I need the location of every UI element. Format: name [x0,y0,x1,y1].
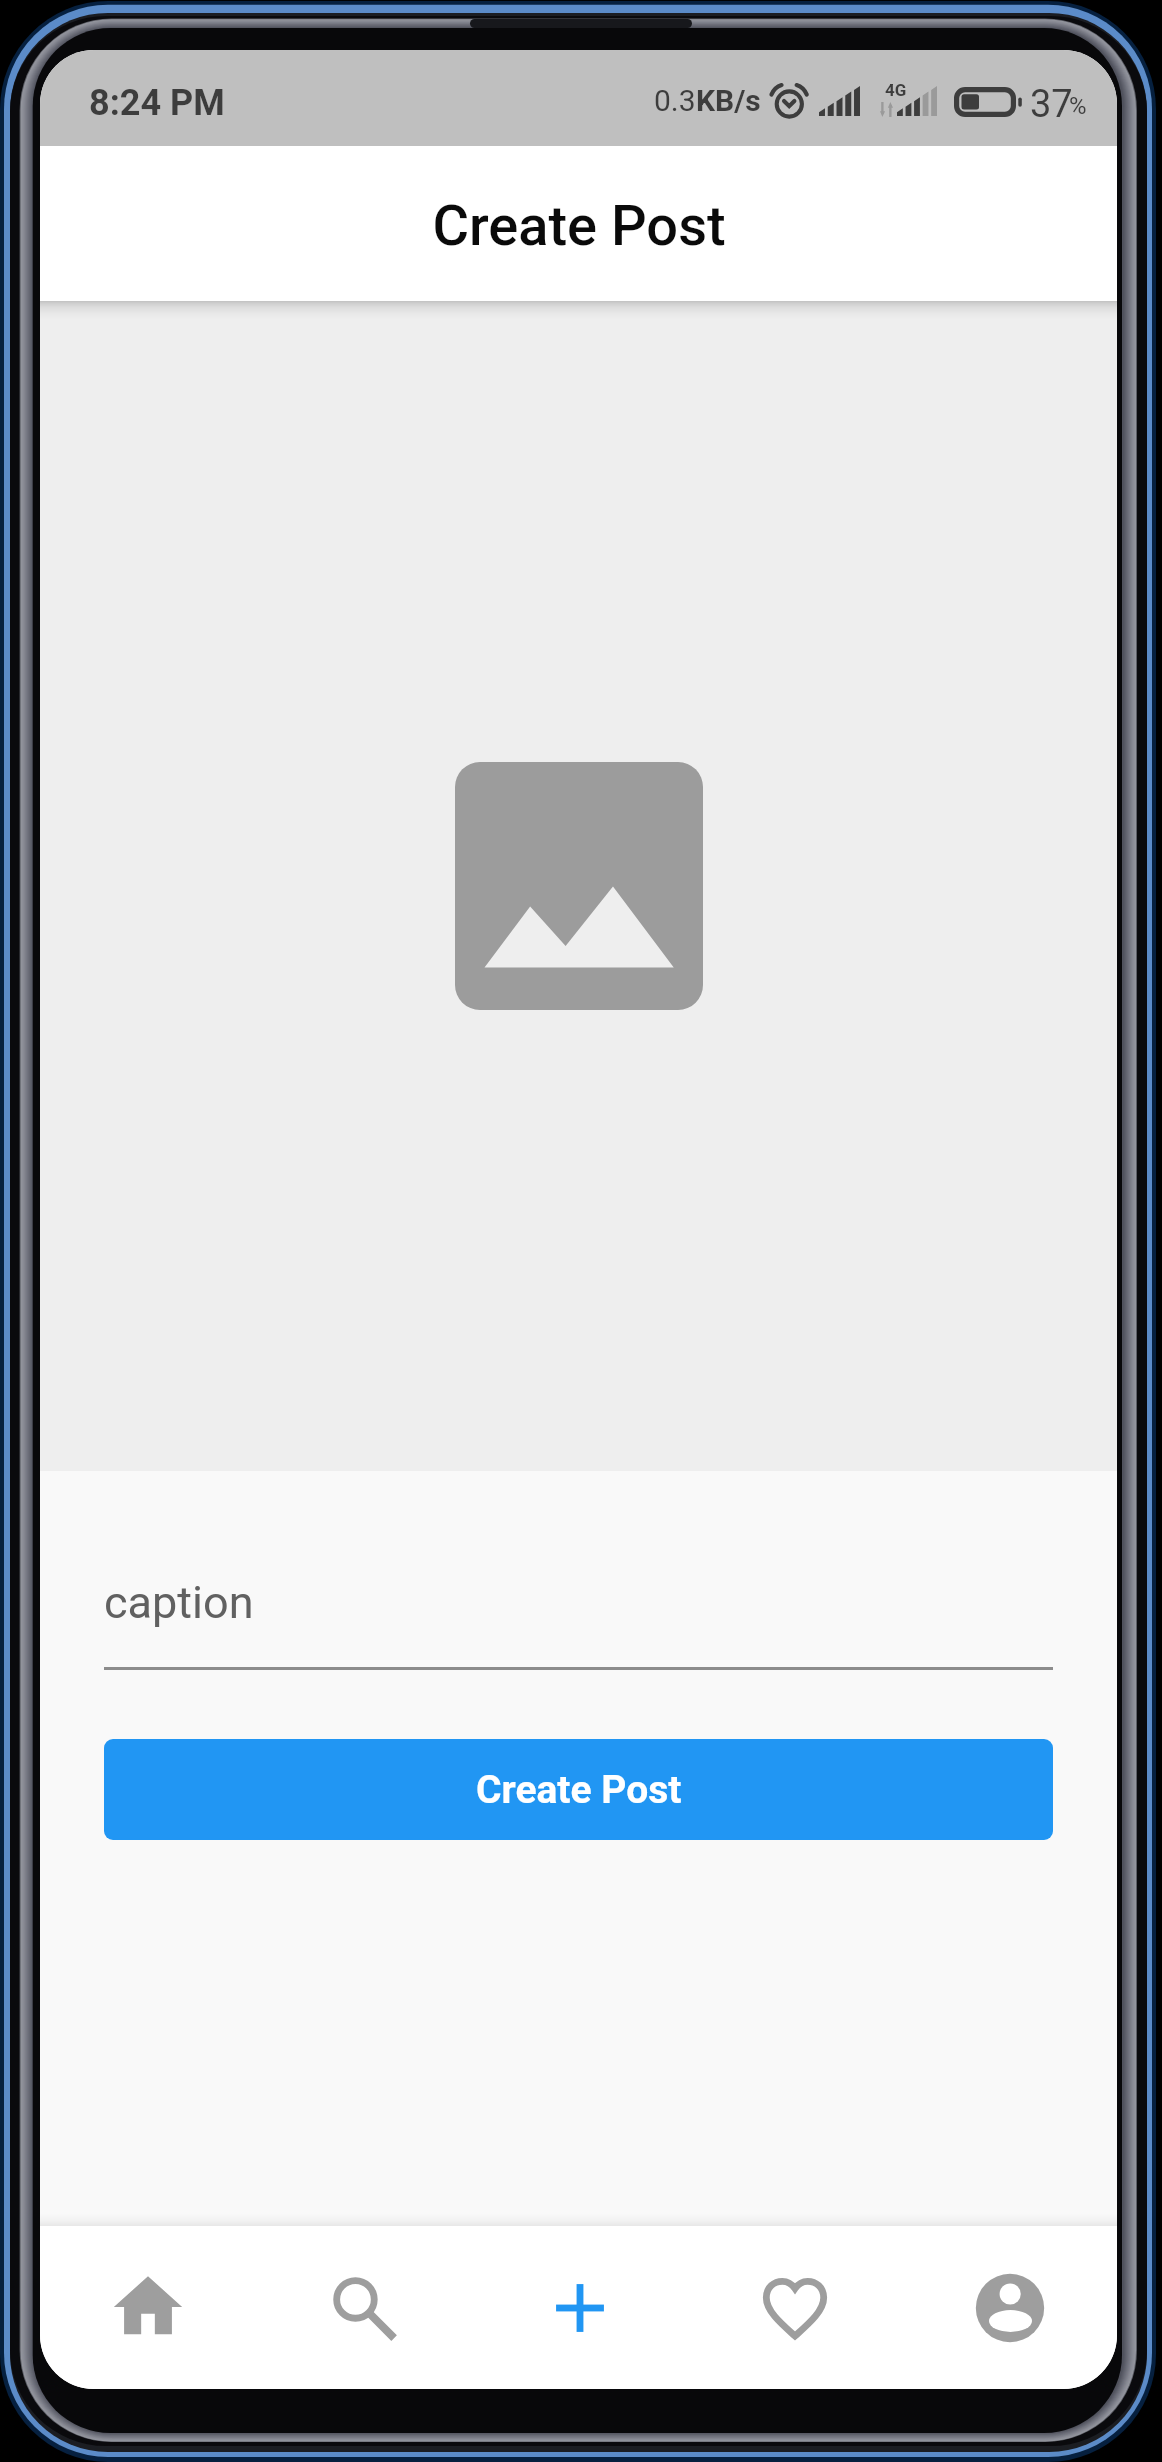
staticText: Create Post [476,1767,682,1813]
button[interactable]: Pick a photo [40,301,1117,1471]
staticText: KB/s [696,83,761,118]
staticText: 4G [885,80,907,100]
button[interactable]: Activity [687,2226,902,2389]
staticText: 8:24 PM [89,82,225,124]
button[interactable]: caption [104,1533,1053,1670]
staticText: Create Post [432,193,726,259]
staticText: caption [104,1576,254,1629]
button[interactable]: Create Post [104,1739,1053,1840]
staticText: % [1069,92,1087,120]
button[interactable]: Profile [902,2226,1117,2389]
button[interactable]: Create post [472,2226,687,2389]
staticText: 0.3 [654,83,696,118]
staticText: 37 [1030,82,1073,127]
button[interactable]: Home [40,2226,256,2389]
button[interactable]: Search [256,2226,472,2389]
